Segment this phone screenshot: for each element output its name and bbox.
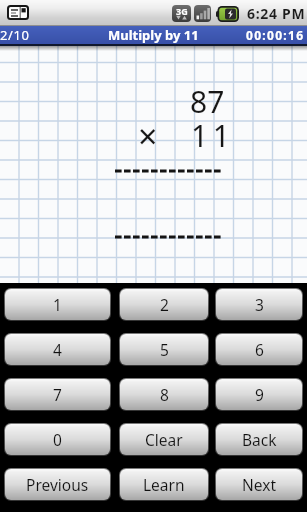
button[interactable]: 5 — [120, 334, 208, 365]
staticText: 6:24 PM — [247, 4, 306, 23]
staticText: 4 — [53, 339, 62, 360]
staticText: 3 — [255, 294, 264, 315]
staticText: 11 — [191, 115, 235, 156]
staticText: 1 — [53, 294, 62, 315]
staticText: 2/10 — [0, 26, 30, 44]
staticText: 9 — [255, 384, 264, 405]
staticText: Back — [242, 429, 277, 450]
button[interactable]: Clear — [120, 424, 208, 455]
staticText: Clear — [145, 429, 183, 450]
button[interactable]: 7 — [5, 379, 110, 410]
staticText: Multiply by 11 — [108, 26, 199, 44]
staticText: 7 — [53, 384, 62, 405]
button[interactable]: 2 — [120, 289, 208, 320]
button[interactable]: 0 — [5, 424, 110, 455]
button[interactable]: Next — [216, 469, 302, 500]
staticText: 00:00:16 — [246, 27, 305, 43]
button[interactable]: 6 — [216, 334, 302, 365]
button[interactable]: Previous — [5, 469, 110, 500]
button[interactable]: 8 — [120, 379, 208, 410]
staticText: 5 — [160, 339, 169, 360]
staticText: 8 — [160, 384, 169, 405]
staticText: Next — [242, 474, 277, 495]
button[interactable]: 3 — [216, 289, 302, 320]
button[interactable]: 4 — [5, 334, 110, 365]
staticText: 0 — [53, 429, 62, 450]
button[interactable]: Learn — [120, 469, 208, 500]
staticText: 87 — [190, 81, 225, 122]
staticText: 3G — [176, 5, 188, 17]
staticText: Learn — [143, 474, 185, 495]
staticText: Previous — [26, 474, 89, 495]
button[interactable]: 9 — [216, 379, 302, 410]
staticText: 2 — [160, 294, 169, 315]
button[interactable]: Back — [216, 424, 302, 455]
staticText: × — [138, 113, 158, 159]
staticText: 6 — [255, 339, 264, 360]
button[interactable]: 1 — [5, 289, 110, 320]
